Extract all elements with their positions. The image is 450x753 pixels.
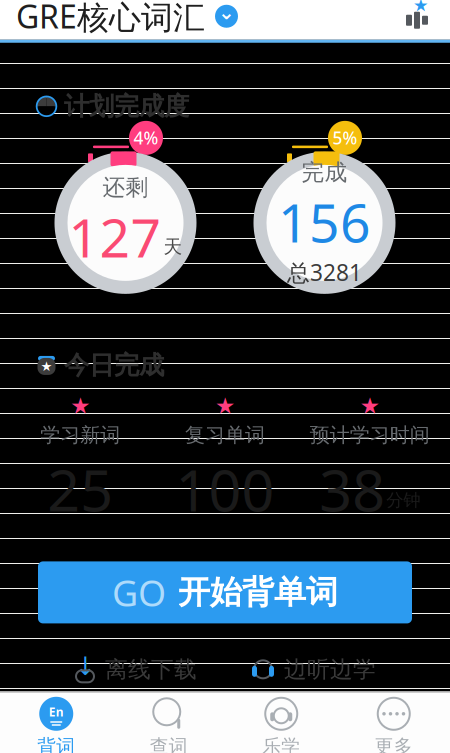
staticText: ★: [70, 393, 90, 419]
button[interactable]: 边听边学: [241, 647, 386, 691]
staticText: 4%: [133, 126, 158, 149]
staticText: 更多: [375, 735, 413, 753]
button[interactable]: En: [0, 689, 112, 753]
staticText: 背词: [37, 735, 75, 753]
staticText: GRE核心词汇: [16, 0, 205, 38]
staticText: ★: [215, 393, 235, 419]
staticText: 25: [47, 451, 113, 527]
staticText: 天: [163, 235, 182, 258]
staticText: En: [49, 704, 64, 720]
staticText: 5%: [332, 126, 357, 149]
button[interactable]: 学习统计: [400, 0, 434, 33]
staticText: 计划完成度: [64, 91, 189, 122]
staticText: 还剩: [102, 173, 148, 201]
staticText: 总3281: [287, 257, 362, 287]
staticText: ↓: [74, 652, 95, 681]
staticText: ★: [360, 393, 380, 419]
staticText: 学习新词: [40, 423, 120, 447]
staticText: ★: [413, 0, 429, 15]
staticText: 复习单词: [185, 423, 265, 447]
button[interactable]: GO: [38, 561, 412, 623]
staticText: 查词: [150, 735, 188, 753]
staticText: 127: [68, 201, 161, 272]
staticText: ★: [40, 359, 52, 374]
staticText: 预计学习时间: [310, 423, 430, 447]
staticText: 乐学: [262, 735, 300, 753]
button[interactable]: 查词: [112, 689, 225, 753]
staticText: 156: [278, 186, 371, 257]
staticText: 38: [319, 451, 385, 527]
button[interactable]: ↓: [64, 647, 207, 691]
button[interactable]: GRE核心词汇: [16, 0, 238, 44]
staticText: 离线下载: [105, 655, 197, 683]
staticText: 100: [175, 451, 274, 527]
staticText: 边听边学: [284, 655, 376, 683]
staticText: 开始背单词: [178, 573, 338, 612]
staticText: ⌄: [218, 1, 235, 24]
staticText: 分钟: [386, 490, 420, 511]
button[interactable]: 乐学: [225, 689, 337, 753]
staticText: GO: [112, 568, 166, 616]
button[interactable]: 更多: [337, 689, 450, 753]
staticText: 完成: [301, 158, 347, 186]
staticText: 今日完成: [64, 350, 164, 381]
